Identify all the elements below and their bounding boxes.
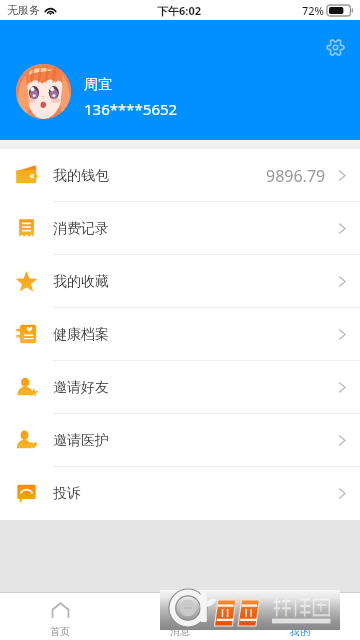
button[interactable]: 我的钱包	[0, 149, 360, 202]
staticText: 首页	[50, 625, 70, 638]
button[interactable]: 投诉	[0, 467, 360, 520]
button[interactable]: 我的收藏	[0, 255, 360, 308]
staticText: 邀请好友	[53, 379, 109, 397]
button[interactable]: 首页	[0, 593, 120, 640]
button[interactable]: Avatar	[16, 64, 71, 119]
staticText: 无服务	[7, 3, 40, 17]
staticText: 消息	[170, 625, 190, 638]
staticText: 我的	[290, 625, 310, 638]
staticText: 健康档案	[53, 326, 109, 344]
button[interactable]: 我的	[240, 593, 360, 640]
staticText: 邀请医护	[53, 432, 109, 450]
staticText: 9896.79	[266, 165, 326, 187]
staticText: 72%	[302, 3, 324, 18]
button[interactable]: 邀请好友	[0, 361, 360, 414]
button[interactable]: 邀请医护	[0, 414, 360, 467]
button[interactable]: 消息	[120, 593, 240, 640]
staticText: 下午6:02	[157, 3, 201, 18]
button[interactable]: 消费记录	[0, 202, 360, 255]
button[interactable]: 健康档案	[0, 308, 360, 361]
staticText: 136****5652	[84, 99, 178, 119]
button[interactable]: Settings	[326, 38, 345, 57]
staticText: 周宜	[84, 76, 112, 94]
staticText: 我的钱包	[53, 167, 109, 185]
staticText: 消费记录	[53, 220, 109, 238]
staticText: 投诉	[53, 485, 81, 503]
staticText: 我的收藏	[53, 273, 109, 291]
